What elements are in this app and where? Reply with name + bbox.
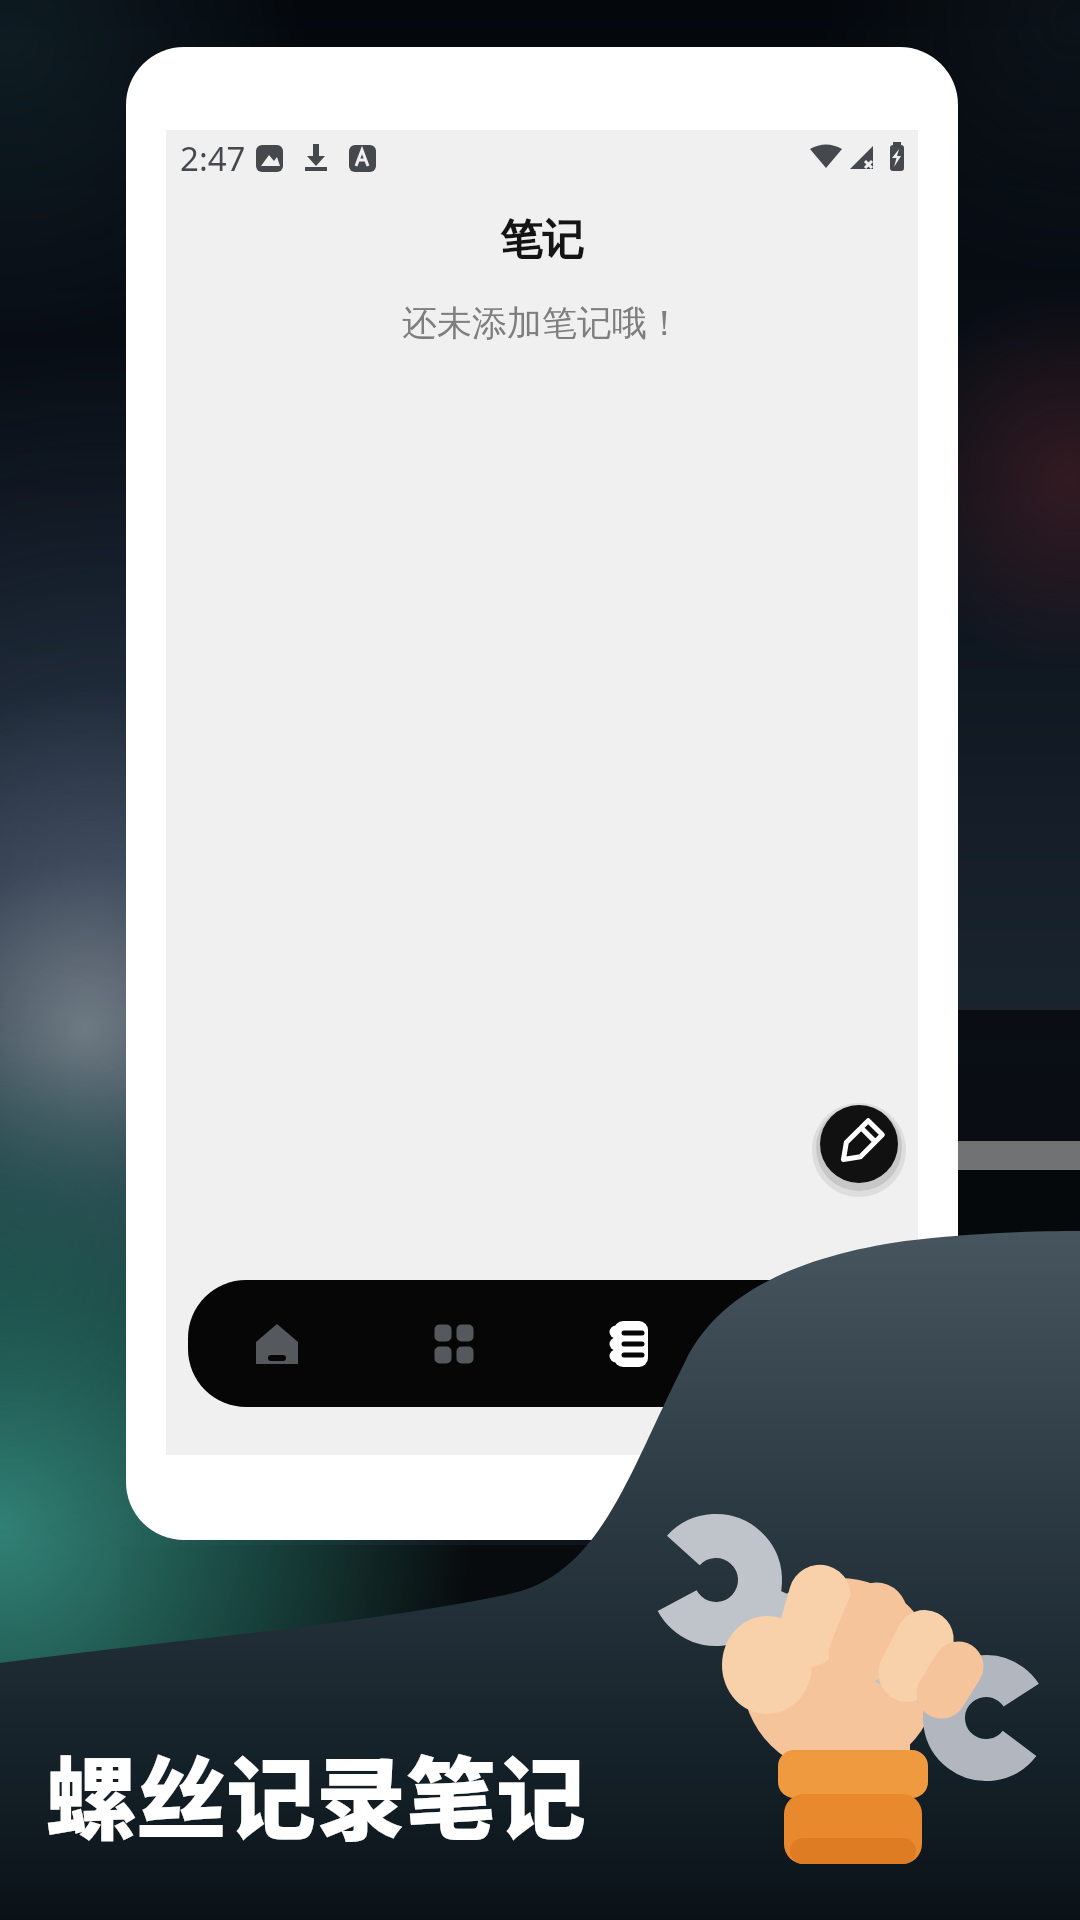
button[interactable]	[188, 1280, 365, 1407]
staticText: 2:47	[180, 136, 246, 181]
button[interactable]	[719, 1280, 896, 1407]
staticText: 还未添加笔记哦！	[402, 301, 682, 345]
button[interactable]	[542, 1280, 719, 1407]
staticText: 螺丝记录笔记	[46, 1728, 586, 1858]
button[interactable]	[820, 1105, 898, 1183]
button[interactable]	[365, 1280, 542, 1407]
staticText: 笔记	[500, 214, 584, 267]
